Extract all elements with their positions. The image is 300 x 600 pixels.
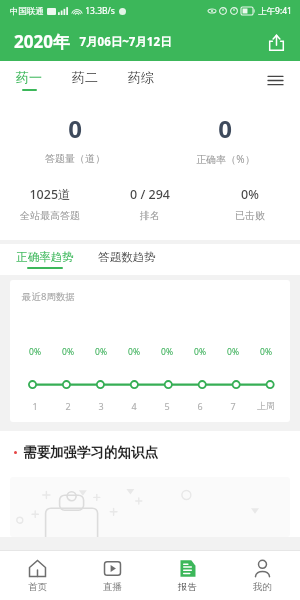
button[interactable]: 正确率趋势 [14, 250, 76, 269]
staticText: 3 [98, 400, 104, 412]
button[interactable]: 我的 [225, 551, 300, 600]
staticText: 答题数趋势 [98, 250, 156, 264]
button[interactable]: 直播 [75, 551, 150, 600]
staticText: 中国联通 [10, 6, 44, 17]
button[interactable]: 答题数趋势 [96, 250, 158, 269]
staticText: 0 [218, 112, 232, 145]
staticText: 0% [161, 346, 173, 358]
staticText: 1025道 [29, 186, 71, 203]
staticText: 7月06日~7月12日 [79, 34, 172, 50]
staticText: 答题量（道） [45, 152, 105, 165]
staticText: 0% [128, 346, 140, 358]
staticText: 0% [95, 346, 107, 358]
staticText: 13.3B/s [85, 5, 115, 17]
staticText: 排名 [140, 209, 160, 222]
staticText: 全站最高答题 [20, 209, 80, 222]
staticText: 药综 [128, 69, 154, 85]
staticText: 2020年 [14, 30, 70, 53]
button[interactable]: 药二 [70, 66, 100, 94]
staticText: 0 [68, 112, 82, 145]
staticText: 1 [32, 400, 38, 412]
staticText: 4 [131, 400, 137, 412]
button[interactable]: 1025道 [0, 186, 100, 222]
staticText: 5 [164, 400, 170, 412]
staticText: 最近8周数据 [22, 290, 75, 303]
staticText: 0% [29, 346, 41, 358]
staticText: 上周 [257, 400, 275, 411]
staticText: 0 / 294 [130, 186, 170, 203]
button[interactable]: 0 [0, 112, 150, 165]
button[interactable]: 0 / 294 [100, 186, 200, 222]
staticText: 药一 [16, 69, 42, 85]
staticText: 正确率（%） [196, 152, 255, 166]
staticText: 0% [227, 346, 239, 358]
button[interactable]: 报告 [150, 551, 225, 600]
button[interactable]: 分享 [262, 28, 290, 56]
staticText: 6 [197, 400, 203, 412]
button[interactable]: 0% [200, 186, 300, 222]
button[interactable]: 药综 [126, 66, 156, 94]
button[interactable]: 0 [150, 112, 300, 166]
staticText: 药二 [72, 69, 98, 85]
staticText: 0% [260, 346, 272, 358]
button[interactable]: 药一 [14, 66, 44, 94]
staticText: 直播 [103, 581, 122, 593]
button[interactable]: 首页 [0, 551, 75, 600]
staticText: 0% [194, 346, 206, 358]
staticText: 0% [241, 186, 259, 203]
staticText: 上午9:41 [258, 5, 292, 17]
staticText: 需要加强学习的知识点 [23, 444, 158, 461]
staticText: 7 [230, 400, 236, 412]
button[interactable]: 菜单 [262, 67, 288, 93]
staticText: 首页 [28, 581, 47, 593]
staticText: 已击败 [235, 209, 265, 222]
staticText: 我的 [253, 581, 272, 593]
staticText: 2 [65, 400, 71, 412]
staticText: 报告 [178, 581, 197, 593]
staticText: 0% [62, 346, 74, 358]
staticText: 正确率趋势 [16, 250, 74, 264]
